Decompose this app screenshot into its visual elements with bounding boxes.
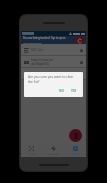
staticText: YES xyxy=(71,89,77,93)
staticText: NO xyxy=(59,89,64,93)
button[interactable]: NO xyxy=(57,88,66,94)
button[interactable]: +880 17 11153354 xyxy=(21,68,86,79)
button[interactable]: Generate xyxy=(42,144,64,157)
button[interactable]: Scan xyxy=(21,144,42,157)
button[interactable]: Delete xyxy=(78,47,84,53)
button[interactable]: Add xyxy=(69,129,82,142)
button[interactable]: YES xyxy=(69,88,79,94)
staticText: History xyxy=(71,152,80,155)
button[interactable]: Delete xyxy=(78,71,84,77)
button[interactable]: https://youtu.be/ xyxy=(21,56,86,67)
button[interactable]: HCC List xyxy=(21,44,86,55)
button[interactable]: Delete xyxy=(78,59,84,65)
staticText: the list? xyxy=(28,80,40,84)
staticText: HCC List xyxy=(31,48,43,52)
staticText: Are you sure you want to clear xyxy=(28,75,74,79)
staticText: Generate xyxy=(48,152,59,155)
button[interactable]: Stop xyxy=(75,37,84,44)
staticText: You are being tracked. Tap to open xyxy=(23,36,66,40)
staticText: the active dialog xyxy=(23,41,42,44)
button[interactable]: History xyxy=(64,144,86,157)
staticText: https://youtu.be/ xyxy=(31,58,54,62)
staticText: Scan xyxy=(29,152,35,155)
staticText: a6eXAgwOXQ xyxy=(31,62,49,66)
